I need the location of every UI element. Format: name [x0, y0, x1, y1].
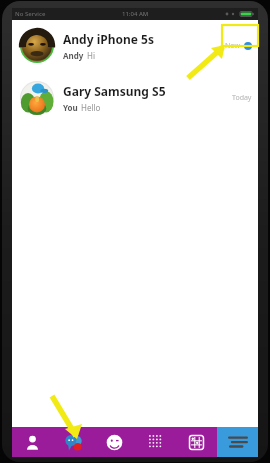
staticText: You	[63, 102, 78, 113]
button[interactable]: More	[217, 427, 258, 457]
staticText: Today	[232, 93, 252, 103]
staticText: Andy	[63, 50, 84, 61]
staticText: Gary Samsung S5	[63, 83, 166, 99]
button[interactable]: Stickers	[94, 427, 135, 457]
staticText: Hi	[87, 50, 95, 61]
staticText: No Service	[15, 10, 46, 18]
button[interactable]: Gary Samsung S5	[12, 72, 258, 124]
staticText: Andy iPhone 5s	[63, 31, 154, 47]
button[interactable]: Games	[176, 427, 217, 457]
button[interactable]: Contacts	[12, 427, 53, 457]
button[interactable]: Andy iPhone 5s	[12, 20, 258, 72]
staticText: Now	[225, 41, 240, 51]
button[interactable]: Apps	[135, 427, 176, 457]
staticText: Hello	[81, 102, 101, 113]
staticText: 11:04 AM	[122, 10, 149, 18]
button[interactable]: Chats	[53, 427, 94, 457]
